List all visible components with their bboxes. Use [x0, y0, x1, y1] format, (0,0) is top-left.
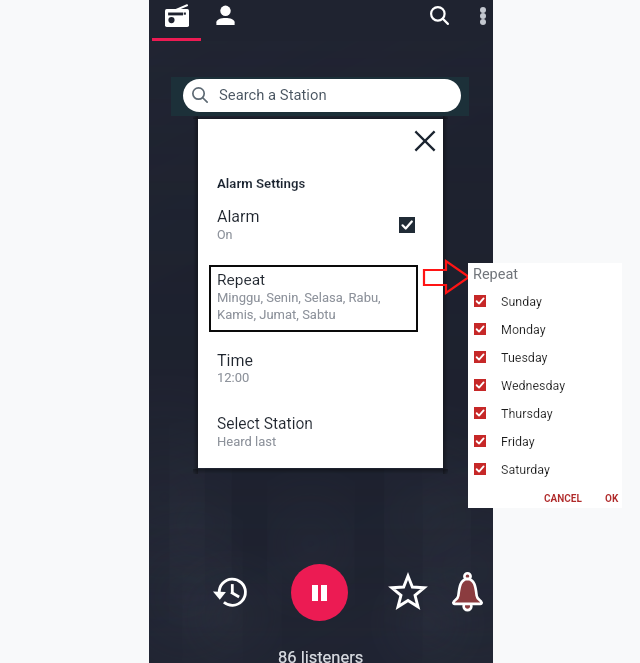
staticText: Tuesday: [501, 350, 548, 365]
staticText: Repeat: [473, 266, 519, 283]
staticText: Thursday: [501, 406, 553, 421]
staticText: Search a Station: [219, 86, 327, 103]
button[interactable]: Repeat: [209, 265, 418, 332]
staticText: Monday: [501, 322, 546, 337]
staticText: Heard last: [217, 434, 277, 449]
staticText: CANCEL: [544, 493, 582, 505]
staticText: Alarm Settings: [217, 176, 306, 191]
button[interactable]: Select Station: [198, 415, 443, 455]
button[interactable]: History: [211, 574, 247, 610]
button[interactable]: Radio stations: [149, 0, 201, 37]
button[interactable]: Friday: [468, 427, 622, 455]
button[interactable]: Monday: [468, 315, 622, 343]
button[interactable]: Profile: [201, 0, 253, 37]
staticText: Wednesday: [501, 378, 566, 393]
button[interactable]: Tuesday: [468, 343, 622, 371]
staticText: Select Station: [217, 415, 313, 433]
staticText: Friday: [501, 434, 535, 449]
staticText: Repeat: [217, 271, 266, 289]
button[interactable]: Pause: [291, 564, 348, 621]
staticText: Sunday: [501, 294, 542, 309]
button[interactable]: CANCEL: [541, 489, 585, 509]
button[interactable]: Close: [409, 125, 441, 157]
staticText: Saturday: [501, 462, 550, 477]
button[interactable]: Saturday: [468, 455, 622, 483]
staticText: 12:00: [217, 370, 250, 385]
staticText: OK: [605, 493, 619, 505]
staticText: Minggu, Senin, Selasa, Rabu, Kamis, Juma…: [217, 290, 381, 323]
button[interactable]: More options: [468, 0, 493, 37]
button[interactable]: Thursday: [468, 399, 622, 427]
button[interactable]: Sunday: [468, 287, 622, 315]
button[interactable]: Favourite: [391, 575, 425, 609]
button[interactable]: Search a Station: [183, 79, 461, 112]
button[interactable]: Alarm: [452, 574, 483, 610]
staticText: Time: [217, 351, 253, 370]
button[interactable]: Wednesday: [468, 371, 622, 399]
button[interactable]: Alarm: [198, 207, 443, 248]
button[interactable]: OK: [602, 489, 622, 509]
staticText: 86 listeners: [278, 648, 364, 663]
staticText: Alarm: [217, 207, 260, 226]
button[interactable]: Search: [424, 0, 464, 37]
button[interactable]: Time: [198, 351, 443, 391]
staticText: On: [217, 227, 233, 242]
